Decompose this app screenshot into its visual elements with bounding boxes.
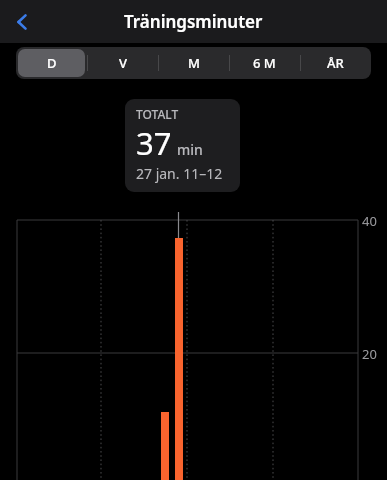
staticText: 6 M <box>253 54 276 72</box>
staticText: 20 <box>362 345 377 363</box>
staticText: M <box>188 54 200 72</box>
button[interactable]: 6 M <box>229 47 300 79</box>
staticText: min <box>177 140 203 159</box>
staticText: Träningsminuter <box>124 10 263 33</box>
staticText: ÅR <box>327 54 344 72</box>
staticText: 27 jan. 11–12 <box>136 164 223 183</box>
staticText: D <box>47 54 57 72</box>
staticText: 40 <box>362 212 377 230</box>
staticText: TOTALT <box>136 106 179 122</box>
button[interactable]: Back <box>0 0 44 43</box>
button[interactable]: TOTALT <box>125 99 240 192</box>
button[interactable]: D <box>16 47 87 79</box>
button[interactable]: V <box>87 47 158 79</box>
staticText: 37 <box>136 122 172 164</box>
button[interactable]: M <box>158 47 229 79</box>
button[interactable]: ÅR <box>300 47 371 79</box>
staticText: V <box>119 54 127 72</box>
